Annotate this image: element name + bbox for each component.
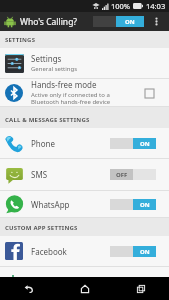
staticText: General settings xyxy=(31,65,78,73)
button[interactable]: ON xyxy=(110,199,156,210)
staticText: Active only if connected to a Bluetooth … xyxy=(31,91,111,106)
button[interactable]: More options xyxy=(144,12,169,31)
staticText: CUSTOM APP SETTINGS xyxy=(5,224,78,232)
button[interactable]: ON xyxy=(110,138,156,149)
staticText: Hands-free mode xyxy=(31,79,97,90)
button[interactable]: Hands-free mode xyxy=(0,79,169,107)
staticText: Settings xyxy=(31,53,62,64)
staticText: Who's Calling? xyxy=(20,16,78,28)
staticText: ON xyxy=(140,140,150,148)
button[interactable]: SMS xyxy=(0,159,169,191)
button[interactable]: Phone xyxy=(0,128,169,159)
button[interactable]: OFF xyxy=(110,169,156,180)
staticText: SMS xyxy=(31,169,48,180)
staticText: 14:03 xyxy=(146,1,166,11)
button[interactable]: ON xyxy=(93,16,144,27)
button[interactable]: Facebook xyxy=(0,236,169,267)
staticText: SETTINGS xyxy=(5,36,36,44)
staticText: ON xyxy=(140,201,150,209)
button[interactable] xyxy=(0,267,169,277)
button[interactable]: ON xyxy=(110,246,156,257)
button[interactable]: WhatsApp xyxy=(0,191,169,218)
staticText: CALL & MESSAGE SETTINGS xyxy=(5,116,90,124)
staticText: Phone xyxy=(31,138,56,149)
button[interactable]: Recent apps xyxy=(113,277,169,300)
staticText: WhatsApp xyxy=(31,199,70,210)
button[interactable]: Hands-free mode xyxy=(142,86,156,100)
staticText: 100% xyxy=(111,1,131,11)
staticText: ON xyxy=(140,248,150,256)
staticText: Facebook xyxy=(31,246,67,257)
staticText: ON xyxy=(125,18,135,26)
button[interactable]: Home xyxy=(57,277,113,300)
button[interactable]: Back xyxy=(0,277,57,300)
staticText: OFF xyxy=(116,171,128,179)
button[interactable]: Settings xyxy=(0,48,169,79)
